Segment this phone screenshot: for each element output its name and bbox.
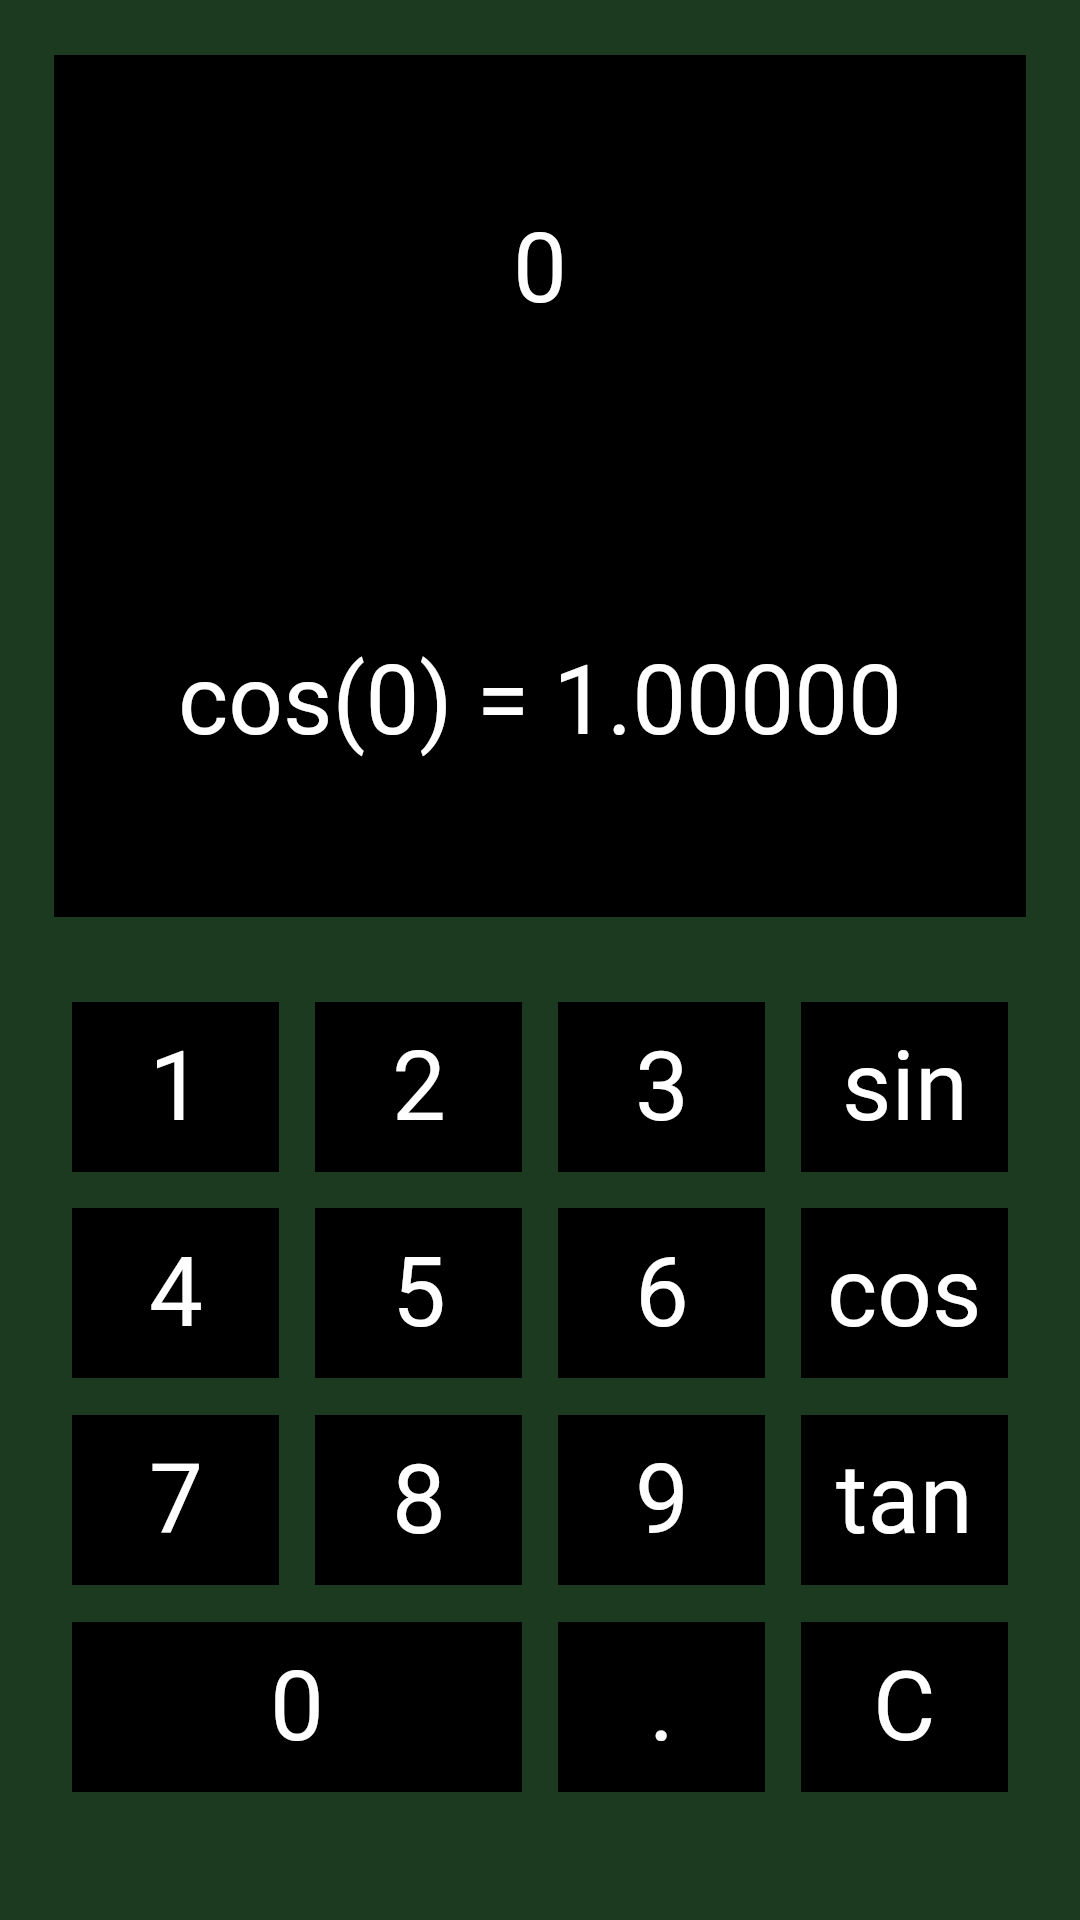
button[interactable]: 5 xyxy=(315,1208,522,1378)
staticText: 9 xyxy=(635,1444,689,1557)
staticText: 0 xyxy=(513,213,567,326)
staticText: 7 xyxy=(149,1444,203,1557)
button[interactable]: 9 xyxy=(558,1415,765,1585)
staticText: cos xyxy=(827,1237,982,1350)
button[interactable]: 2 xyxy=(315,1002,522,1172)
staticText: 1 xyxy=(149,1031,203,1144)
button[interactable]: 7 xyxy=(72,1415,279,1585)
staticText: 4 xyxy=(149,1237,203,1350)
button[interactable]: 4 xyxy=(72,1208,279,1378)
button[interactable]: 3 xyxy=(558,1002,765,1172)
button[interactable]: 0 xyxy=(72,1622,522,1792)
button[interactable]: 1 xyxy=(72,1002,279,1172)
button[interactable]: C xyxy=(801,1622,1008,1792)
staticText: . xyxy=(649,1651,675,1764)
staticText: tan xyxy=(836,1444,973,1557)
staticText: sin xyxy=(842,1031,968,1144)
button[interactable]: 8 xyxy=(315,1415,522,1585)
staticText: 6 xyxy=(635,1237,689,1350)
staticText: cos(0) = 1.00000 xyxy=(178,645,903,758)
button[interactable]: cos xyxy=(801,1208,1008,1378)
staticText: 0 xyxy=(270,1651,324,1764)
button[interactable]: . xyxy=(558,1622,765,1792)
staticText: 5 xyxy=(392,1237,446,1350)
staticText: 2 xyxy=(392,1031,446,1144)
staticText: C xyxy=(873,1651,936,1764)
button[interactable]: tan xyxy=(801,1415,1008,1585)
staticText: 8 xyxy=(392,1444,446,1557)
button[interactable]: 6 xyxy=(558,1208,765,1378)
button[interactable]: sin xyxy=(801,1002,1008,1172)
staticText: 3 xyxy=(635,1031,689,1144)
